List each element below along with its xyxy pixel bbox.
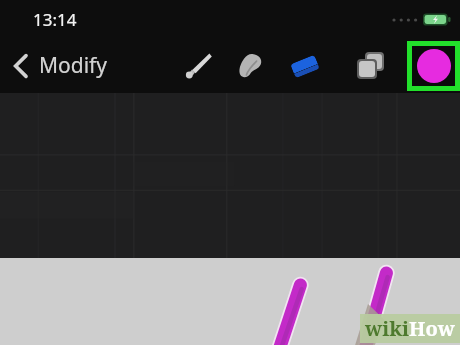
staticText: 13:14 [33,8,77,31]
other: Smudge [235,51,265,81]
staticText: Modify [39,51,108,80]
other: Eraser [289,53,321,79]
button[interactable]: Smudge [228,38,272,93]
button[interactable]: Eraser [283,38,327,93]
staticText: How [409,315,455,342]
button[interactable]: Brush [176,38,220,93]
button[interactable]: Layers [349,38,393,93]
staticText: wiki [365,315,409,342]
other: Back [12,53,30,79]
other: Brush [183,51,213,81]
button[interactable]: Colour [412,46,455,86]
other: Layers [356,51,386,81]
button[interactable]: Back [0,45,118,86]
